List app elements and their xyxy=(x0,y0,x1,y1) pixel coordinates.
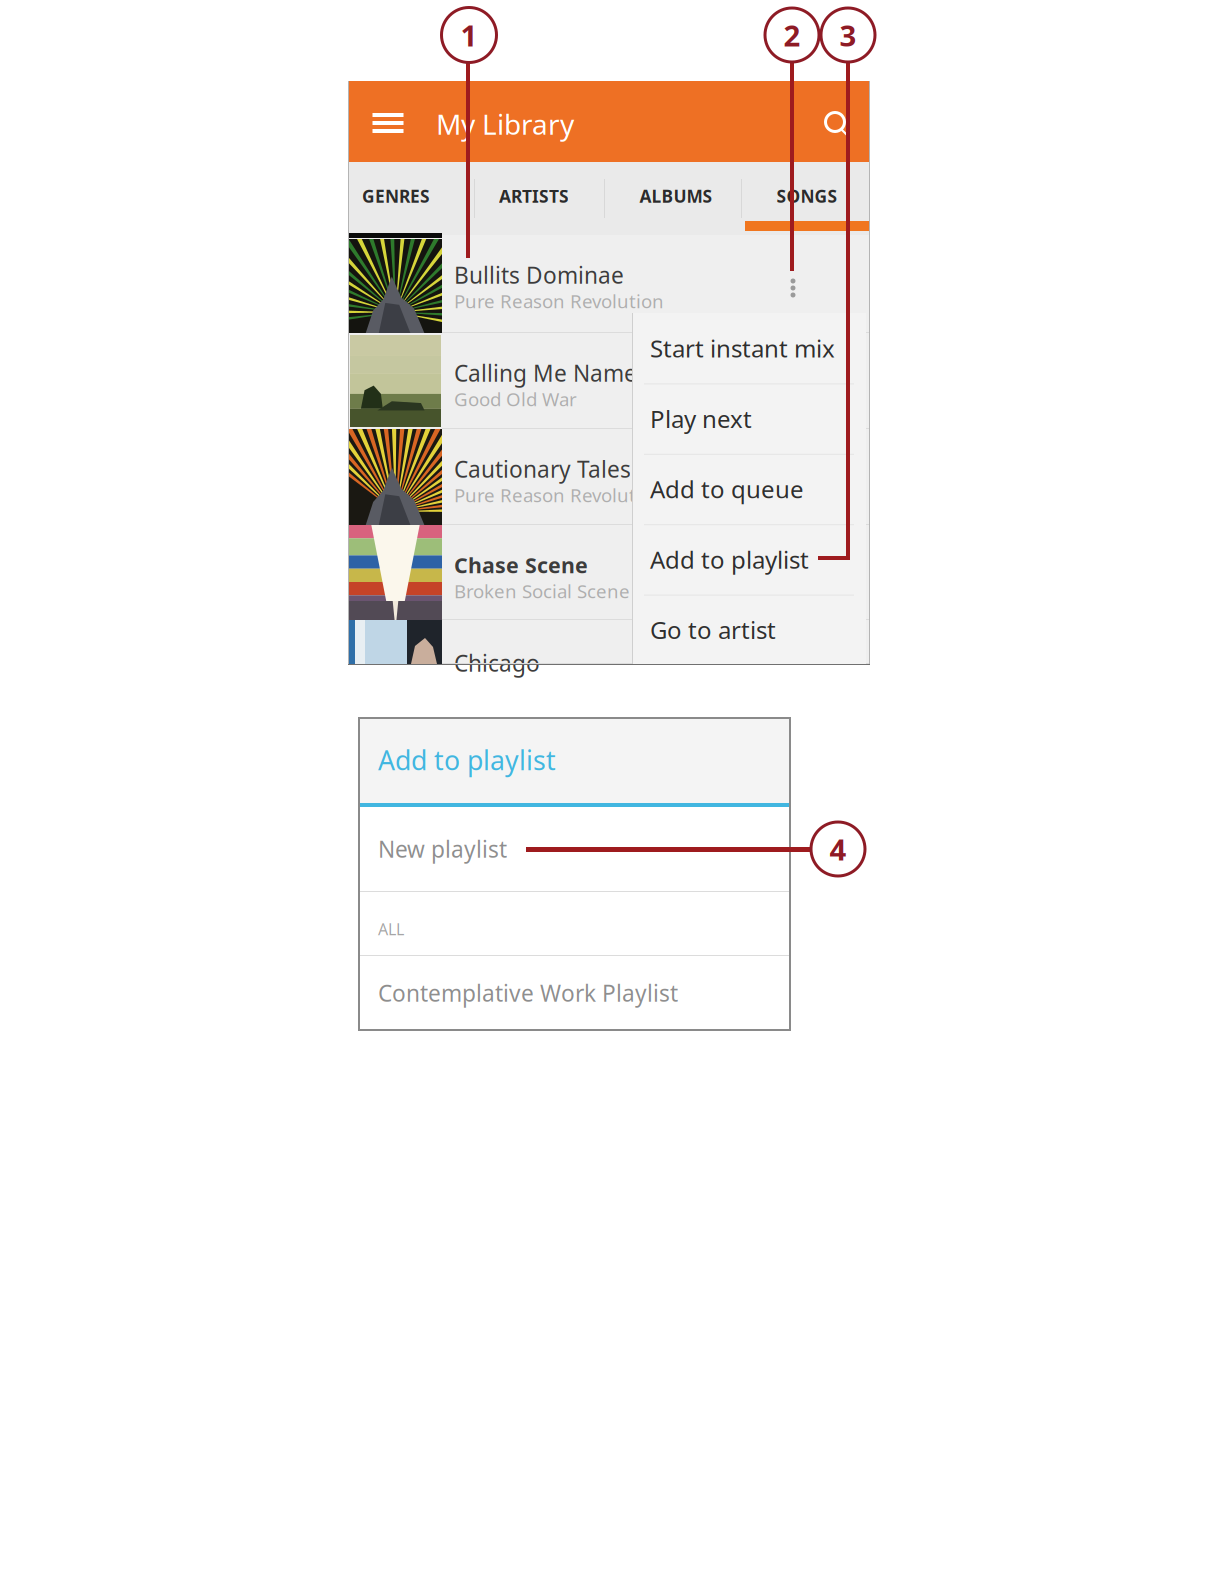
staticText: 1 xyxy=(460,15,477,54)
staticText: Good Old War xyxy=(454,387,577,411)
staticText: Chase Scene xyxy=(454,551,588,579)
button[interactable]: Contemplative Work Playlist xyxy=(358,955,791,1031)
button[interactable]: ALBUMS xyxy=(605,162,742,221)
staticText: ARTISTS xyxy=(499,184,569,207)
button[interactable]: More options xyxy=(769,255,817,321)
button[interactable]: ARTISTS xyxy=(474,162,605,221)
staticText: SONGS xyxy=(776,184,837,207)
button[interactable]: Search xyxy=(814,102,862,150)
staticText: ALL xyxy=(378,918,404,940)
button[interactable]: GENRES xyxy=(348,162,474,221)
staticText: Chicago xyxy=(454,648,540,678)
staticText: Add to playlist xyxy=(378,742,556,778)
button[interactable]: Bullits Dominae xyxy=(454,235,870,333)
button[interactable]: Chase Scene xyxy=(454,525,870,620)
button[interactable]: Menu xyxy=(360,95,416,151)
button[interactable]: Start instant mix xyxy=(632,313,866,383)
staticText: 2 xyxy=(783,15,800,54)
staticText: Pure Reason Revolution xyxy=(454,289,664,313)
staticText: New playlist xyxy=(378,834,507,864)
staticText: Add to queue xyxy=(650,473,804,505)
button[interactable]: Go to artist xyxy=(632,595,866,665)
button[interactable]: Calling Me Name xyxy=(454,333,870,429)
staticText: Go to artist xyxy=(650,614,776,646)
staticText: 3 xyxy=(839,15,856,54)
staticText: My Library xyxy=(436,105,574,143)
button[interactable]: New playlist xyxy=(358,807,791,891)
staticText: Play next xyxy=(650,403,752,435)
staticText: Cautionary Tales xyxy=(454,454,631,484)
button[interactable]: Cautionary Tales xyxy=(454,429,870,525)
staticText: 4 xyxy=(829,829,846,868)
staticText: Add to playlist xyxy=(650,543,809,575)
button[interactable]: SONGS xyxy=(742,162,870,221)
button[interactable]: Play next xyxy=(632,383,866,454)
staticText: ALBUMS xyxy=(639,184,712,207)
staticText: Start instant mix xyxy=(650,332,835,364)
button[interactable]: Add to playlist xyxy=(632,524,866,595)
staticText: Bullits Dominae xyxy=(454,260,624,290)
staticText: Calling Me Name xyxy=(454,358,637,388)
button[interactable]: Add to queue xyxy=(632,454,866,524)
staticText: Broken Social Scene xyxy=(454,579,630,603)
button[interactable]: Chicago xyxy=(454,620,870,664)
staticText: Pure Reason Revolution xyxy=(454,483,664,507)
staticText: Contemplative Work Playlist xyxy=(378,978,678,1008)
staticText: GENRES xyxy=(362,184,430,207)
